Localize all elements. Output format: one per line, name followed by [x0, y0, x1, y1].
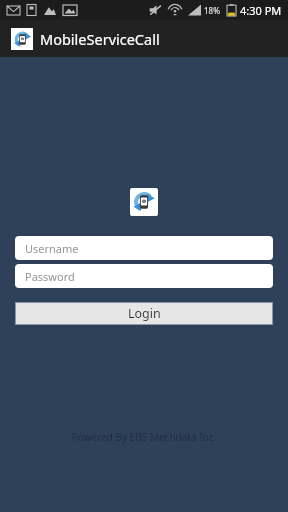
- button[interactable]: Password: [15, 264, 273, 288]
- button[interactable]: App icon: [11, 28, 33, 50]
- button[interactable]: Login: [15, 302, 273, 325]
- staticText: 4:30 PM: [240, 3, 282, 18]
- staticText: Password: [25, 269, 75, 284]
- staticText: Username: [25, 241, 79, 256]
- staticText: Login: [128, 305, 161, 322]
- staticText: Powered By EBS Mechdata Inc.: [0, 430, 288, 444]
- button[interactable]: Username: [15, 236, 273, 260]
- staticText: 18%: [204, 5, 220, 16]
- staticText: MobileServiceCall: [40, 29, 160, 49]
